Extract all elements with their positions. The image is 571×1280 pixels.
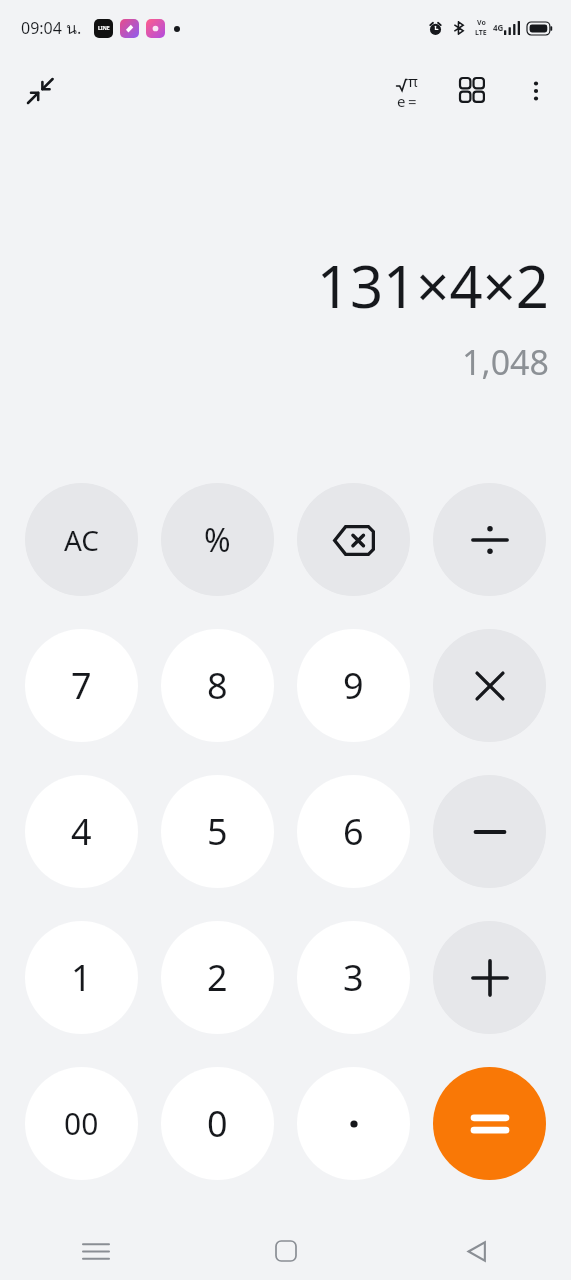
staticText: 3 [343, 953, 364, 1002]
button[interactable]: 0 [161, 1067, 274, 1180]
staticText: = [408, 91, 417, 111]
button[interactable]: 1 [25, 921, 138, 1034]
button[interactable]: AC [25, 483, 138, 596]
staticText: 00 [64, 1103, 99, 1144]
staticText: 1,048 [462, 339, 549, 385]
other: Decimal point [348, 1118, 360, 1130]
other: Minus [471, 827, 509, 837]
staticText: e [397, 91, 406, 111]
staticText: LINE [98, 25, 110, 32]
staticText: 2 [207, 953, 228, 1002]
staticText: 5 [207, 807, 228, 856]
button[interactable]: 5 [161, 775, 274, 888]
button[interactable]: Equals [433, 1067, 546, 1180]
staticText: 131×4×2 [316, 246, 549, 325]
button[interactable]: Decimal point [297, 1067, 410, 1180]
button[interactable]: Home [191, 1222, 381, 1280]
staticText: 0 [207, 1099, 228, 1148]
button[interactable]: 00 [25, 1067, 138, 1180]
staticText: 6 [343, 807, 364, 856]
staticText: 09:04 น. [21, 16, 82, 41]
button[interactable]: Unit converter [447, 65, 499, 117]
button[interactable]: % [161, 483, 274, 596]
staticText: % [204, 518, 231, 562]
button[interactable]: 8 [161, 629, 274, 742]
button[interactable]: Multiply [433, 629, 546, 742]
staticText: π [408, 71, 418, 91]
button[interactable]: 2 [161, 921, 274, 1034]
button[interactable]: Scientific mode [381, 65, 433, 117]
staticText: LTE [475, 28, 487, 38]
staticText: 9 [343, 661, 364, 710]
button[interactable]: More options [511, 66, 561, 116]
button[interactable]: 3 [297, 921, 410, 1034]
staticText: 8 [207, 661, 228, 710]
other: Plus [471, 959, 509, 997]
button[interactable]: Backspace [297, 483, 410, 596]
other: Backspace [332, 518, 376, 562]
button[interactable]: Plus [433, 921, 546, 1034]
button[interactable]: 4 [25, 775, 138, 888]
staticText: Vo [477, 18, 486, 28]
button[interactable]: Divide [433, 483, 546, 596]
other: Multiply [473, 669, 507, 703]
staticText: 4G [493, 22, 504, 33]
button[interactable]: Collapse [14, 65, 66, 117]
staticText: 4 [71, 807, 92, 856]
staticText: AC [64, 521, 100, 559]
staticText: 7 [71, 661, 92, 710]
staticText: 1 [71, 953, 92, 1002]
button[interactable]: 9 [297, 629, 410, 742]
button[interactable]: 7 [25, 629, 138, 742]
button[interactable]: Back [381, 1222, 571, 1280]
other: Divide [470, 520, 510, 560]
button[interactable]: Minus [433, 775, 546, 888]
button[interactable]: Recent apps [0, 1222, 191, 1280]
button[interactable]: 6 [297, 775, 410, 888]
